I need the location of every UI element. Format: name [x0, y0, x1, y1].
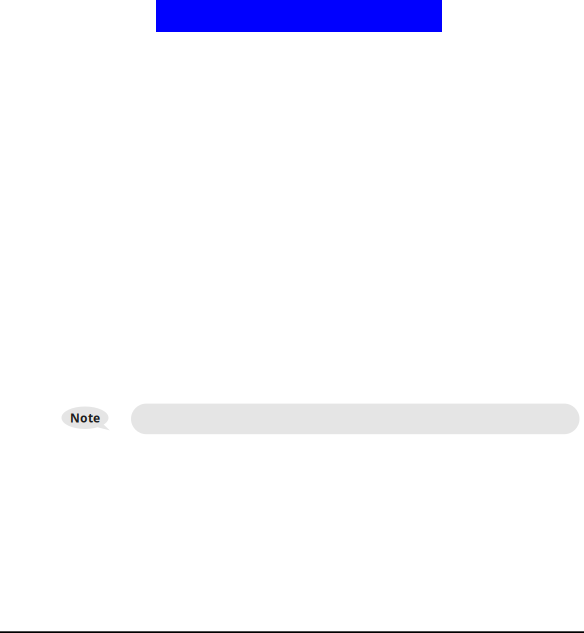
button[interactable]: Note — [61, 406, 108, 434]
staticText: Note — [70, 410, 100, 426]
